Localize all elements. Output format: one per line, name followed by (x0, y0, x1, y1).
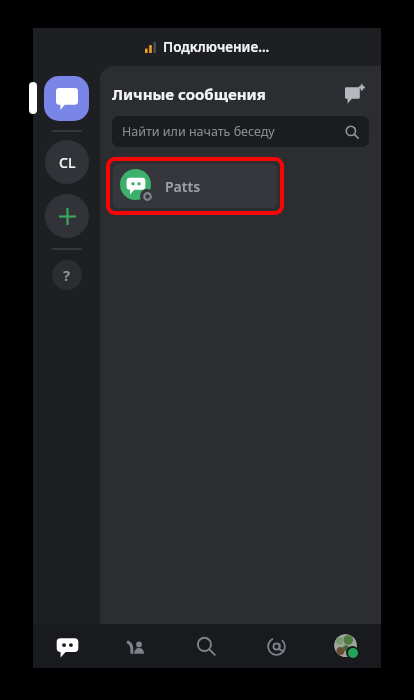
button[interactable]: Direct messages (44, 76, 89, 121)
button[interactable]: Friends (102, 624, 171, 668)
staticText: CL (59, 153, 76, 172)
staticText: Patts (165, 177, 201, 196)
button[interactable]: Home (33, 624, 102, 668)
button[interactable]: CL (45, 140, 89, 184)
button[interactable]: Mentions (241, 624, 311, 668)
button[interactable]: New direct message (339, 78, 371, 110)
button[interactable]: Patts (113, 164, 277, 208)
button[interactable]: Search (171, 624, 241, 668)
staticText: ? (63, 265, 71, 285)
button[interactable]: Add a server (45, 194, 89, 238)
button[interactable]: Найти или начать беседу (112, 116, 369, 147)
staticText: Подключение... (163, 38, 270, 56)
button[interactable]: Profile (311, 624, 381, 668)
staticText: Личные сообщения (112, 84, 266, 104)
button[interactable]: Help (52, 260, 82, 290)
staticText: Найти или начать беседу (122, 123, 275, 140)
